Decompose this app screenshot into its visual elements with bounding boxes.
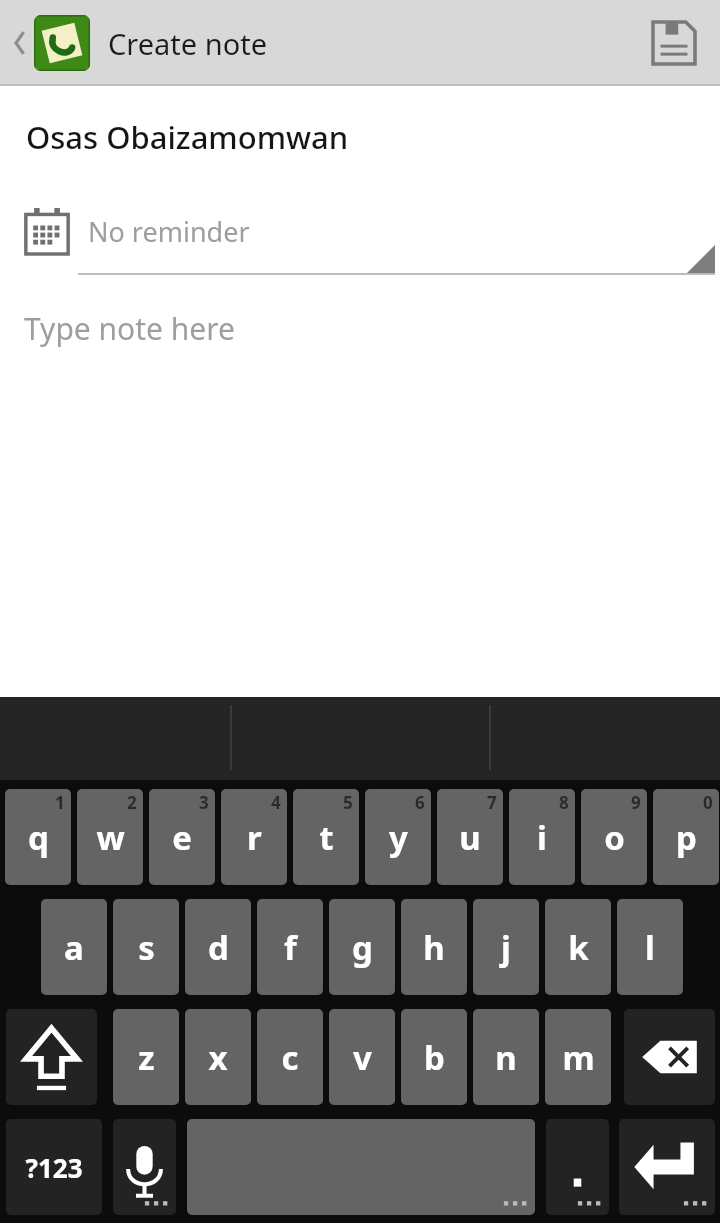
staticText: 2 — [127, 791, 137, 814]
button[interactable]: Navigate up — [6, 15, 94, 71]
button[interactable]: Enter — [619, 1119, 715, 1215]
button[interactable]: u — [437, 789, 503, 885]
staticText: 6 — [415, 791, 425, 814]
staticText: d — [208, 925, 229, 970]
staticText: g — [352, 925, 373, 970]
button[interactable]: m — [545, 1009, 611, 1105]
button[interactable]: Voice input — [113, 1119, 176, 1215]
button[interactable]: Backspace — [624, 1009, 715, 1105]
button[interactable]: Shift — [6, 1009, 97, 1105]
staticText: h — [423, 925, 445, 970]
staticText: v — [353, 1035, 372, 1080]
staticText: n — [495, 1035, 517, 1080]
staticText: l — [645, 925, 655, 970]
staticText: 7 — [487, 791, 497, 814]
staticText: 5 — [343, 791, 353, 814]
staticText: No reminder — [88, 213, 250, 250]
button[interactable]: Space — [187, 1119, 535, 1215]
staticText: 3 — [199, 791, 209, 814]
button[interactable]: y — [365, 789, 431, 885]
staticText: Osas Obaizamomwan — [26, 116, 349, 158]
button[interactable]: No reminder — [0, 195, 720, 280]
button[interactable]: n — [473, 1009, 539, 1105]
staticText: r — [247, 815, 262, 860]
button[interactable]: o — [581, 789, 647, 885]
staticText: 1 — [55, 791, 65, 814]
button[interactable]: k — [545, 899, 611, 995]
other: Navigate up — [10, 26, 30, 60]
button[interactable]: t — [293, 789, 359, 885]
staticText: y — [389, 815, 408, 860]
staticText: s — [138, 925, 155, 970]
staticText: f — [284, 925, 297, 970]
button[interactable]: z — [113, 1009, 179, 1105]
button[interactable]: r — [221, 789, 287, 885]
staticText: w — [96, 815, 125, 860]
button[interactable]: ?123 — [6, 1119, 102, 1215]
button[interactable]: d — [185, 899, 251, 995]
staticText: a — [64, 925, 84, 970]
button[interactable]: l — [617, 899, 683, 995]
button[interactable]: Save — [642, 11, 706, 75]
button[interactable]: i — [509, 789, 575, 885]
staticText: k — [568, 925, 589, 970]
staticText: ?123 — [25, 1150, 83, 1185]
staticText: u — [459, 815, 481, 860]
button[interactable]: q — [5, 789, 71, 885]
staticText: p — [676, 815, 697, 860]
staticText: x — [208, 1035, 228, 1080]
button[interactable]: s — [113, 899, 179, 995]
staticText: b — [424, 1035, 445, 1080]
staticText: Type note here — [24, 308, 235, 349]
staticText: e — [172, 815, 192, 860]
button[interactable]: w — [77, 789, 143, 885]
staticText: 4 — [271, 791, 281, 814]
button[interactable]: x — [185, 1009, 251, 1105]
button[interactable]: Period — [546, 1119, 609, 1215]
staticText: Create note — [108, 24, 268, 63]
button[interactable]: e — [149, 789, 215, 885]
staticText: q — [28, 815, 49, 860]
button[interactable]: a — [41, 899, 107, 995]
staticText: 8 — [559, 791, 569, 814]
staticText: m — [562, 1035, 595, 1080]
button[interactable]: j — [473, 899, 539, 995]
staticText: j — [501, 925, 511, 970]
button[interactable]: h — [401, 899, 467, 995]
button[interactable]: g — [329, 899, 395, 995]
staticText: 9 — [631, 791, 641, 814]
button[interactable]: Type note here — [0, 308, 720, 697]
staticText: c — [281, 1035, 299, 1080]
button[interactable]: c — [257, 1009, 323, 1105]
staticText: 0 — [703, 791, 713, 814]
staticText: t — [319, 815, 334, 860]
button[interactable]: p — [653, 789, 719, 885]
button[interactable]: f — [257, 899, 323, 995]
staticText: o — [604, 815, 625, 860]
staticText: z — [138, 1035, 155, 1080]
button[interactable]: v — [329, 1009, 395, 1105]
button[interactable]: b — [401, 1009, 467, 1105]
staticText: i — [537, 815, 547, 860]
